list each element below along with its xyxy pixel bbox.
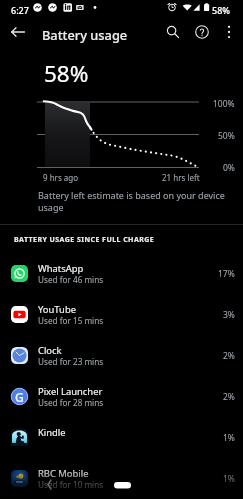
staticText: Clock [38,344,62,357]
staticText: 0% [223,162,235,174]
staticText: 58% [212,4,230,16]
button[interactable]: YouTube [0,294,243,335]
staticText: 100% [213,98,235,110]
staticText: 9 hrs ago [43,172,79,183]
staticText: 1% [223,473,235,485]
staticText: 50% [218,130,235,142]
staticText: 2% [223,391,235,403]
staticText: Used for 15 mins [38,315,104,326]
button[interactable]: WhatsApp [0,253,243,294]
button[interactable]: Search [159,18,187,46]
staticText: BATTERY USAGE SINCE FULL CHARGE [14,235,155,245]
staticText: Used for 46 mins [38,274,104,285]
staticText: 3% [223,309,235,321]
button[interactable]: Kindle [0,417,243,458]
button[interactable]: More options [215,18,243,46]
staticText: Battery usage [42,26,128,43]
button[interactable]: Help [188,18,216,46]
staticText: Used for 28 mins [38,397,104,408]
button[interactable]: Clock [0,335,243,376]
button[interactable]: Navigate up [4,18,32,46]
staticText: 17% [218,268,235,280]
staticText: RBC Mobile [38,467,89,480]
staticText: Battery left estimate is based on your d… [38,189,228,214]
button[interactable]: G [0,376,243,417]
staticText: Pixel Launcher [38,385,103,398]
staticText: YouTube [38,303,76,316]
staticText: Kindle [38,426,66,439]
button[interactable]: RBC Mobile [0,458,243,499]
staticText: 2% [223,350,235,362]
staticText: 58% [44,58,89,89]
staticText: 6:27 [11,4,29,16]
staticText: Used for 23 mins [38,356,104,367]
staticText: 1% [223,432,235,444]
staticText: 21 hrs left [162,172,200,183]
staticText: G [15,389,24,405]
staticText: Used for 10 mins [38,479,104,490]
staticText: WhatsApp [38,262,84,275]
